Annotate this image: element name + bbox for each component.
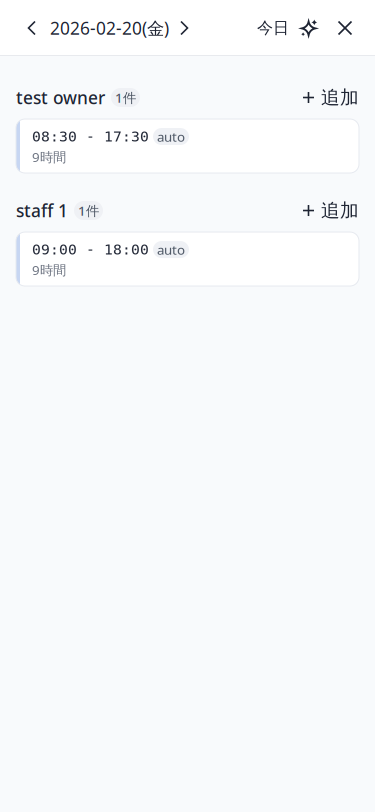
staticText: 9時間: [32, 261, 66, 279]
button[interactable]: 追加: [302, 86, 359, 109]
button[interactable]: Previous day: [17, 10, 47, 46]
button[interactable]: 09:00 - 18:00: [0, 232, 375, 286]
staticText: 追加: [321, 86, 359, 109]
staticText: auto: [157, 128, 185, 145]
button[interactable]: Close: [328, 8, 362, 48]
staticText: 追加: [321, 199, 359, 222]
staticText: 1件: [78, 202, 99, 219]
staticText: 9時間: [32, 148, 66, 166]
staticText: test owner: [16, 86, 105, 109]
button[interactable]: 追加: [302, 199, 359, 222]
button[interactable]: Auto fill: [290, 8, 328, 48]
button[interactable]: 今日: [256, 8, 290, 48]
staticText: staff 1: [16, 199, 68, 222]
staticText: auto: [157, 241, 185, 258]
staticText: 09:00 - 18:00: [32, 241, 149, 258]
staticText: 1件: [115, 89, 136, 106]
button[interactable]: 08:30 - 17:30: [0, 119, 375, 173]
button[interactable]: Next day: [169, 10, 199, 46]
staticText: 08:30 - 17:30: [32, 128, 149, 145]
staticText: 2026-02-20(金): [50, 16, 169, 39]
staticText: 今日: [257, 18, 289, 38]
